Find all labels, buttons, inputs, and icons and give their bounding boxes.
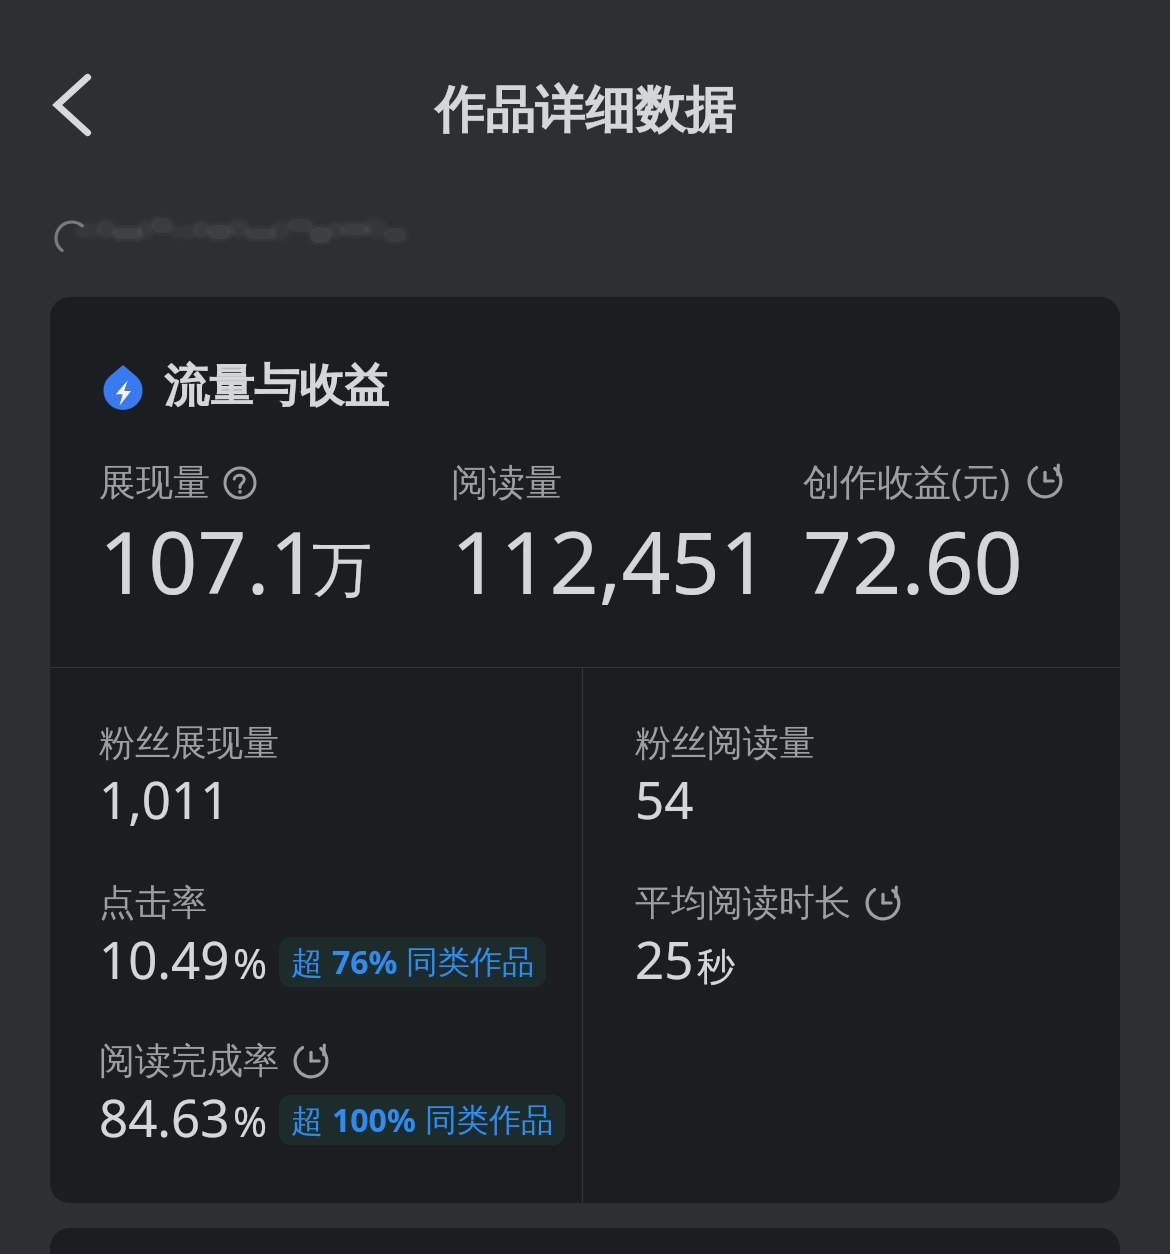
staticText: 10.49 bbox=[99, 924, 230, 993]
staticText: % bbox=[233, 1093, 268, 1149]
staticText: 84.63 bbox=[99, 1082, 230, 1151]
staticText: 107.1 bbox=[99, 502, 319, 619]
button[interactable]: Back bbox=[33, 66, 111, 144]
staticText: 点击率 bbox=[99, 880, 207, 925]
staticText: 万 bbox=[312, 532, 372, 608]
button[interactable]: 超 bbox=[279, 937, 546, 987]
staticText: 54 bbox=[635, 764, 694, 833]
staticText: 粉丝阅读量 bbox=[635, 720, 815, 765]
staticText: 平均阅读时长 bbox=[635, 880, 851, 925]
button[interactable]: 平均阅读时长 数据延迟说明 bbox=[865, 885, 901, 921]
staticText: 同类作品 bbox=[406, 942, 534, 982]
button[interactable]: 创作收益(元) 数据延迟说明 bbox=[1027, 463, 1063, 499]
staticText: 流量与收益 bbox=[164, 358, 389, 415]
staticText: 1,011 bbox=[99, 764, 230, 833]
staticText: 72.60 bbox=[803, 502, 1023, 619]
staticText: 作品详细数据 bbox=[435, 79, 735, 142]
staticText: 超 bbox=[291, 1098, 332, 1142]
button[interactable]: 关于展现量 bbox=[223, 466, 257, 500]
staticText: 创作收益(元) bbox=[803, 455, 1011, 506]
staticText: 100% bbox=[332, 1098, 425, 1142]
staticText: 展现量 bbox=[99, 459, 210, 506]
staticText: 76% bbox=[332, 940, 406, 984]
button[interactable]: 阅读完成率 数据延迟说明 bbox=[293, 1043, 329, 1079]
staticText: 秒 bbox=[697, 943, 735, 991]
staticText: 超 bbox=[291, 940, 332, 984]
button[interactable]: 超 bbox=[279, 1095, 565, 1145]
staticText: 粉丝展现量 bbox=[99, 720, 279, 765]
staticText: 112,451 bbox=[451, 502, 770, 619]
staticText: 阅读完成率 bbox=[99, 1038, 279, 1083]
staticText: % bbox=[233, 935, 268, 991]
staticText: 同类作品 bbox=[425, 1100, 553, 1140]
staticText: 阅读量 bbox=[451, 459, 562, 506]
staticText: 25 bbox=[635, 924, 694, 993]
